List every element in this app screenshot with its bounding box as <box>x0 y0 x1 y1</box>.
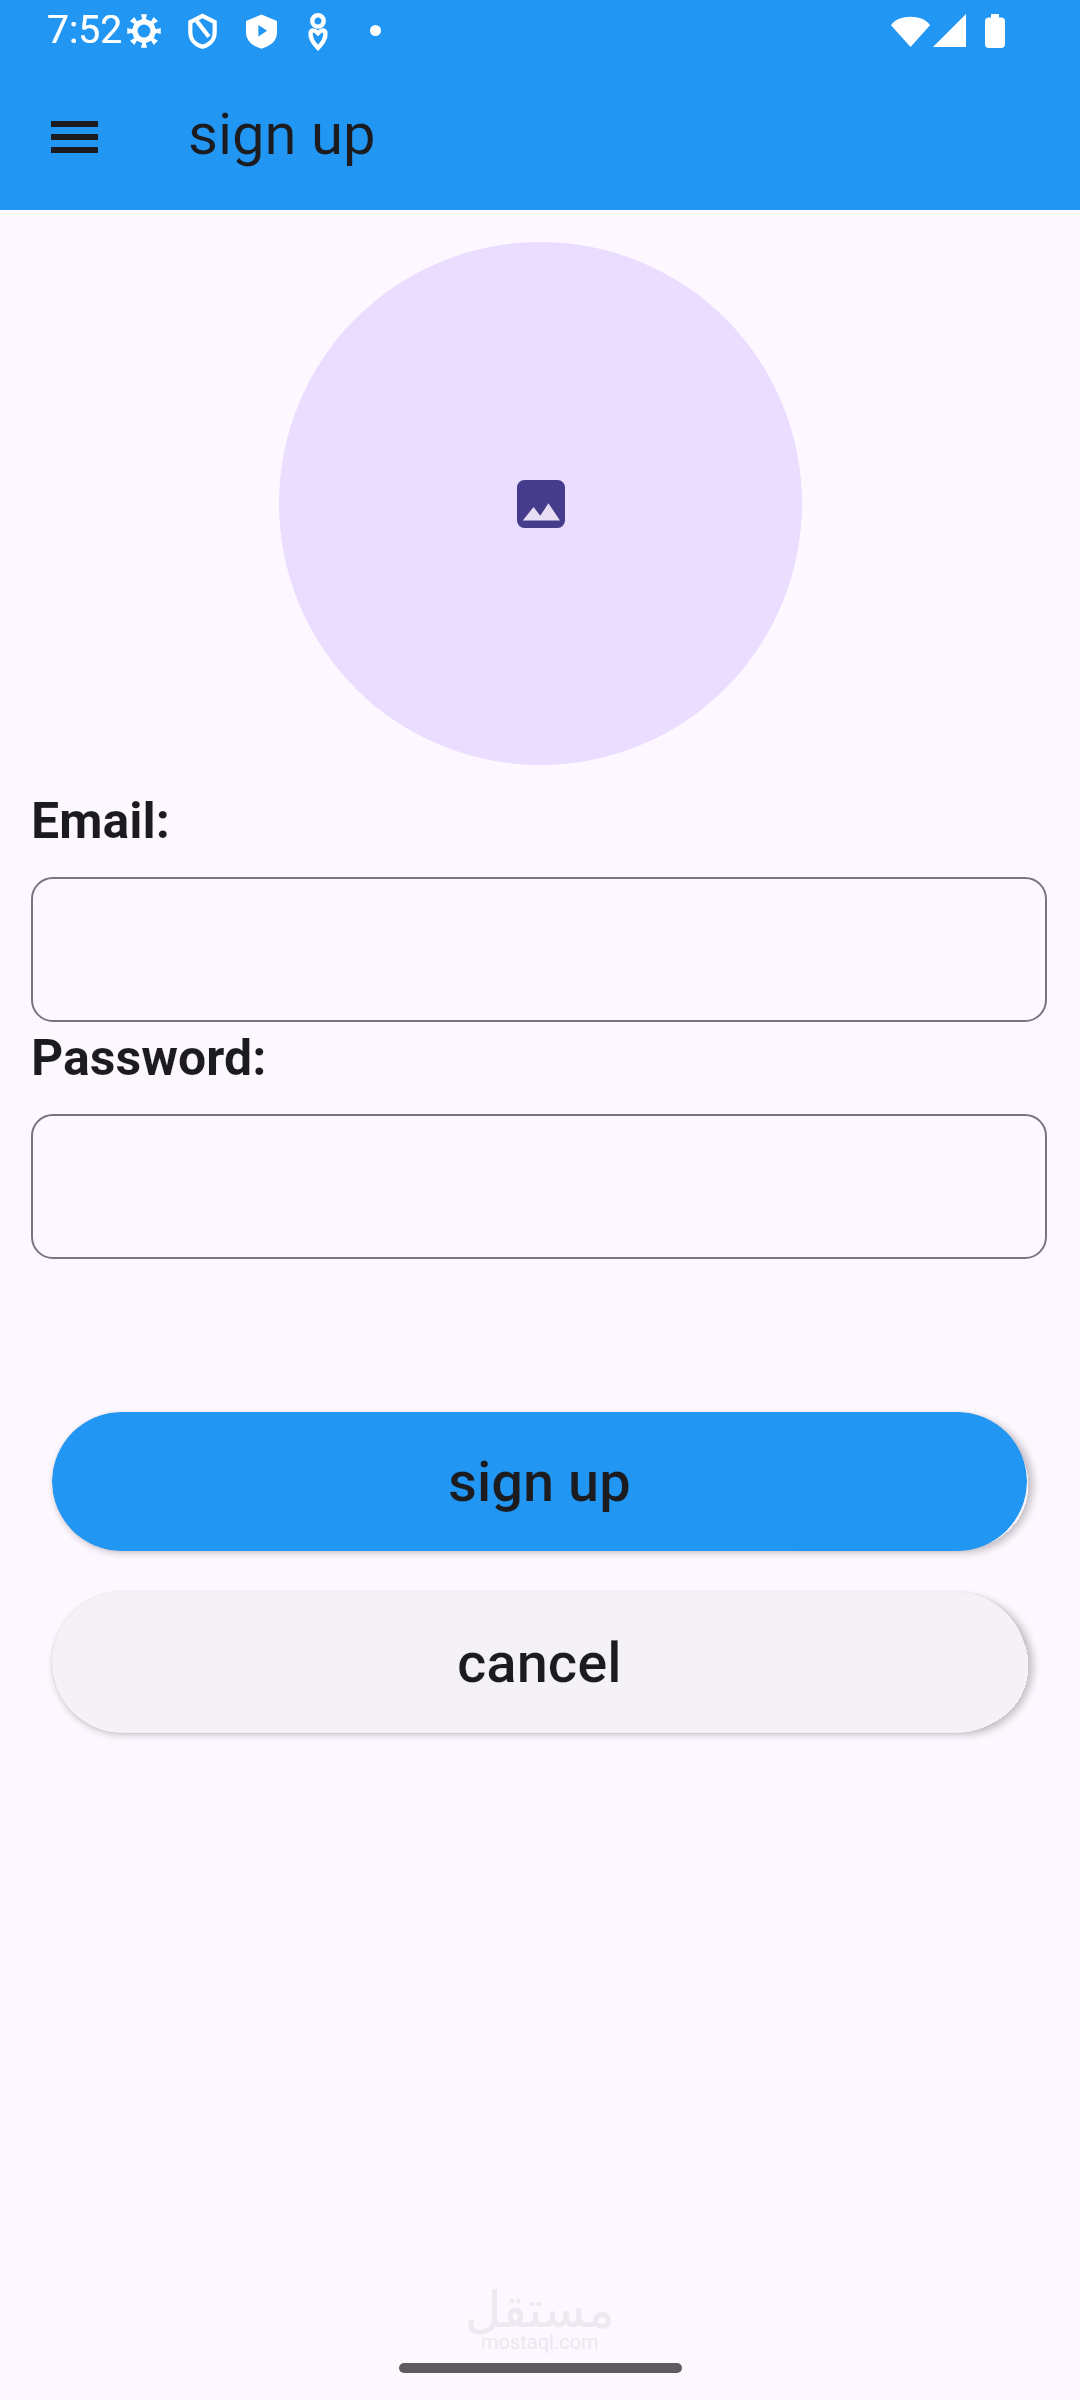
staticText: 7:52 <box>47 7 123 53</box>
button[interactable]: sign up <box>52 1412 1027 1551</box>
staticText: sign up <box>448 1449 631 1515</box>
staticText: Email: <box>31 792 170 851</box>
staticText: mostaql.com <box>481 2330 599 2353</box>
staticText: sign up <box>188 100 376 168</box>
button[interactable]: Email input field <box>31 877 1047 1022</box>
staticText: cancel <box>457 1630 622 1696</box>
button[interactable]: Profile photo <box>279 242 802 765</box>
button[interactable]: Open navigation menu <box>26 89 122 185</box>
button[interactable]: Password input field <box>31 1114 1047 1259</box>
staticText: Password: <box>31 1029 267 1088</box>
button[interactable]: cancel <box>52 1592 1027 1733</box>
staticText: مستقل <box>465 2281 615 2339</box>
